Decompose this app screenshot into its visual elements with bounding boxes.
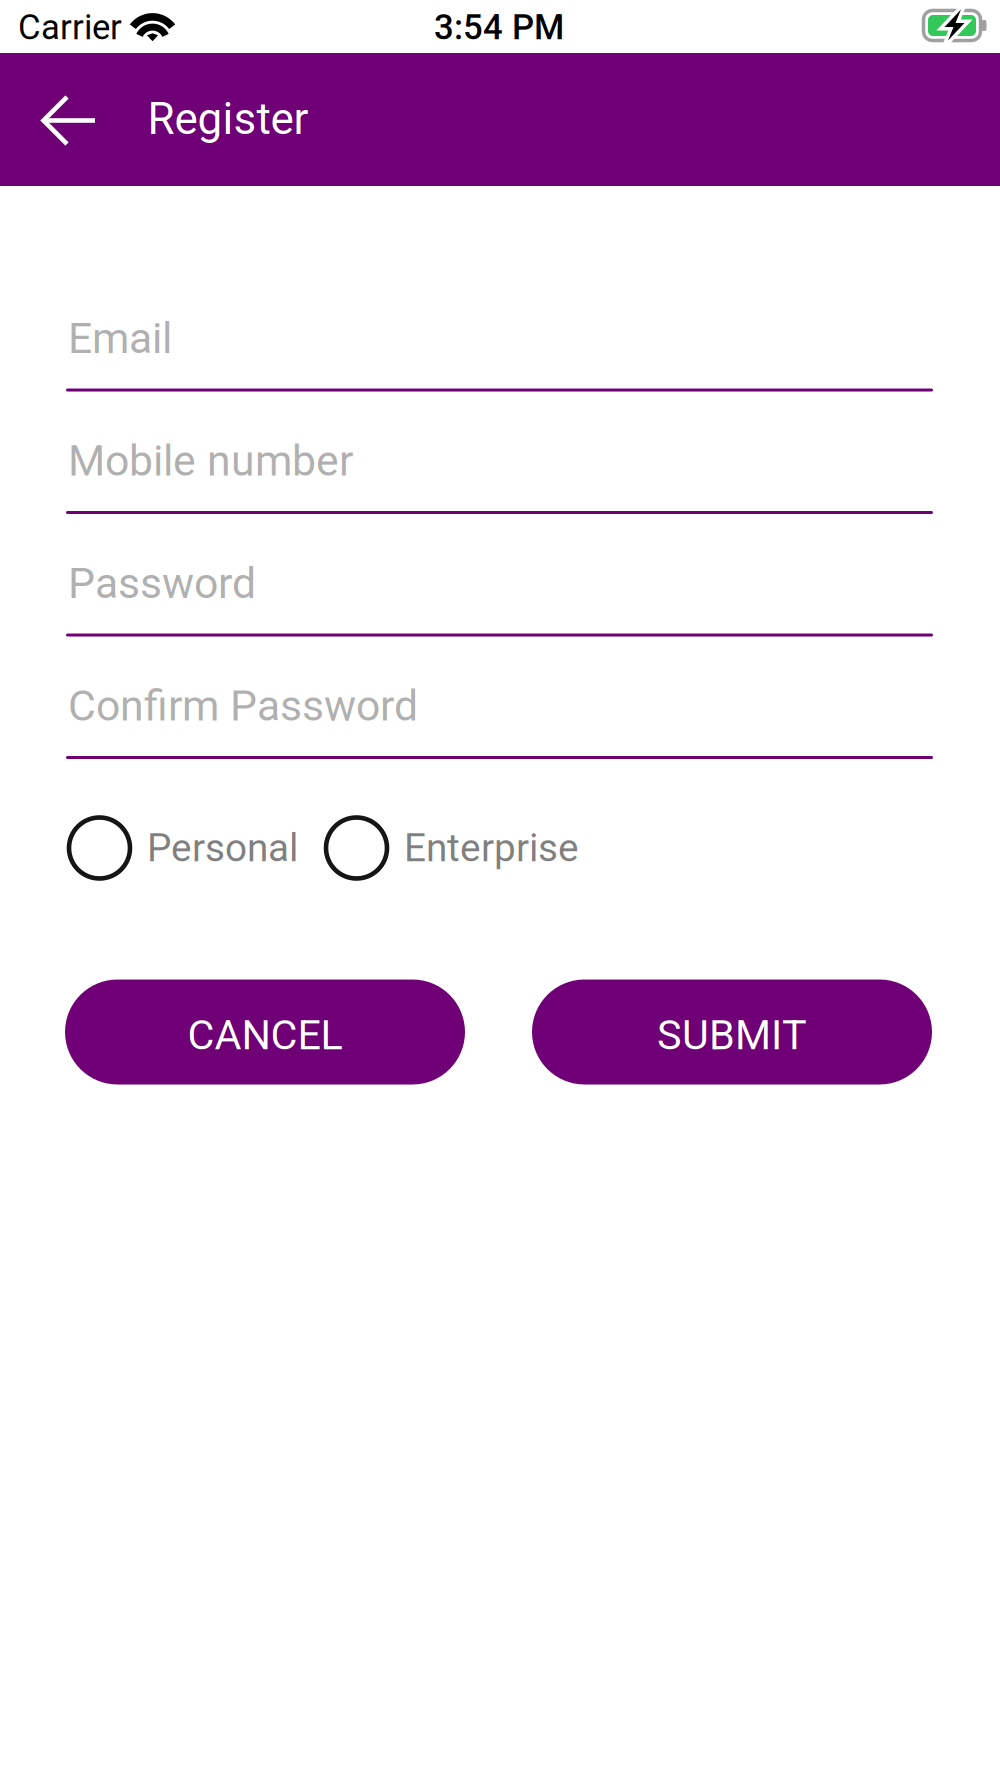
staticText: CANCEL	[187, 1011, 342, 1059]
staticText: Enterprise	[404, 825, 579, 871]
button[interactable]: Back	[11, 62, 127, 178]
button[interactable]: Mobile number	[66, 422, 933, 514]
staticText: SUBMIT	[657, 1011, 807, 1059]
button[interactable]: Email	[66, 299, 933, 391]
button[interactable]: CANCEL	[65, 979, 465, 1084]
staticText: Email	[68, 313, 172, 363]
button[interactable]: Enterprise	[326, 813, 594, 883]
staticText: Register	[147, 93, 308, 145]
staticText: 3:54 PM	[434, 7, 564, 48]
button[interactable]: Confirm Password	[66, 667, 933, 759]
button[interactable]: Personal	[69, 813, 307, 883]
staticText: Personal	[147, 825, 298, 871]
button[interactable]: Password	[66, 544, 933, 636]
staticText: Carrier	[18, 7, 122, 48]
button[interactable]: SUBMIT	[532, 979, 932, 1084]
staticText: Confirm Password	[68, 681, 418, 731]
staticText: Password	[68, 558, 256, 608]
staticText: Mobile number	[68, 436, 353, 486]
